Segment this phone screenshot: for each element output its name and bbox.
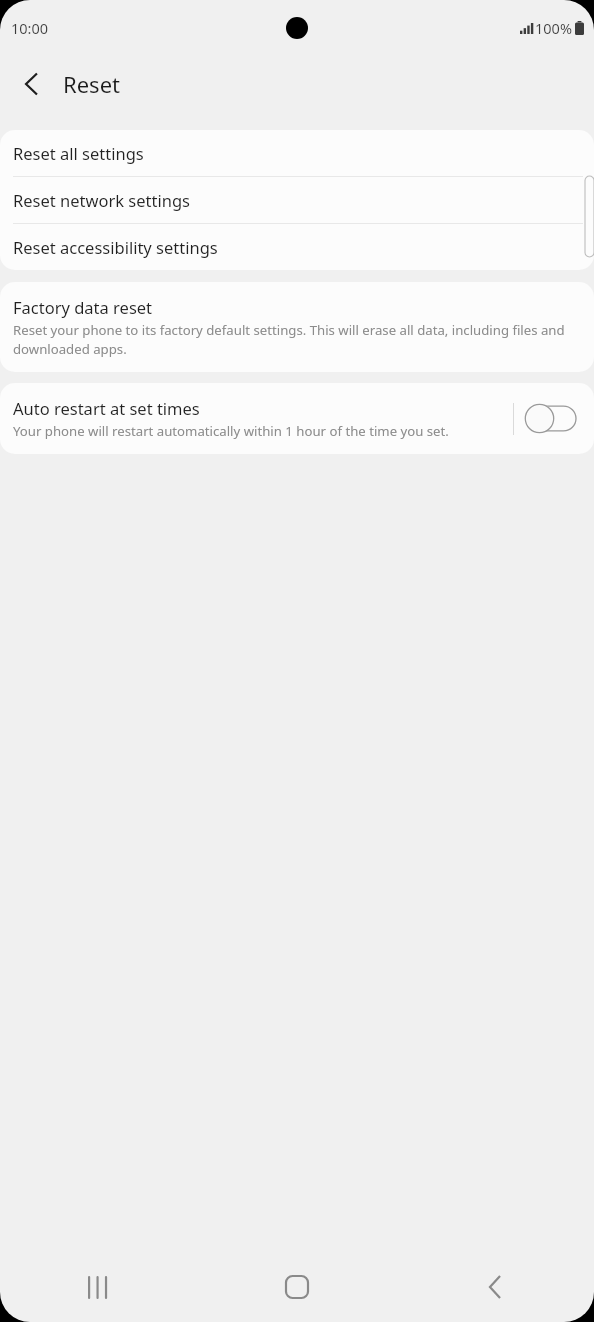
staticText: Reset network settings bbox=[13, 189, 190, 211]
staticText: Auto restart at set times bbox=[13, 397, 200, 419]
button[interactable]: Reset all settings bbox=[0, 130, 594, 176]
staticText: Reset all settings bbox=[13, 142, 144, 164]
button[interactable]: Recent apps bbox=[0, 1252, 198, 1322]
button[interactable]: Factory data reset bbox=[0, 282, 594, 372]
staticText: 10:00 bbox=[11, 18, 49, 38]
staticText: Factory data reset bbox=[13, 296, 153, 318]
button[interactable]: Back bbox=[13, 66, 49, 102]
staticText: Reset bbox=[63, 69, 120, 99]
staticText: Reset your phone to its factory default … bbox=[13, 321, 576, 358]
button[interactable]: Reset accessibility settings bbox=[0, 224, 594, 270]
staticText: Your phone will restart automatically wi… bbox=[13, 422, 449, 440]
staticText: 100% bbox=[535, 18, 572, 38]
button[interactable]: Auto restart at set times toggle bbox=[524, 403, 576, 434]
button[interactable]: Home bbox=[198, 1252, 396, 1322]
button[interactable]: Auto restart at set times bbox=[0, 383, 594, 454]
staticText: Reset accessibility settings bbox=[13, 236, 218, 258]
button[interactable]: Back bbox=[396, 1252, 594, 1322]
button[interactable]: Reset network settings bbox=[0, 177, 594, 223]
